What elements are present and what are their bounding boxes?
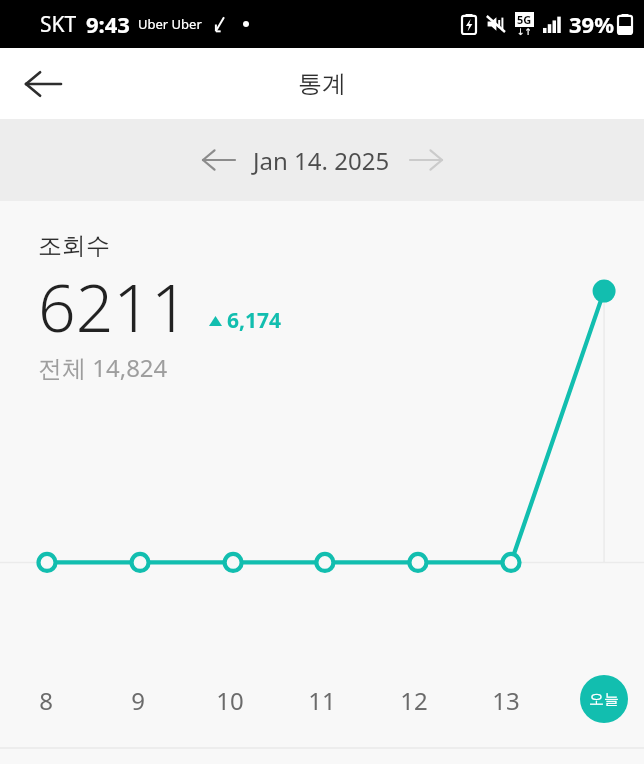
staticText: 전체 14,824 — [38, 351, 168, 384]
staticText: 6,174 — [227, 306, 282, 335]
button[interactable]: 오늘 — [580, 675, 628, 723]
staticText: 11 — [308, 684, 336, 717]
staticText: 12 — [400, 684, 428, 717]
staticText: 9 — [131, 684, 145, 717]
staticText: 9:43 — [86, 9, 130, 39]
staticText: 조회수 — [38, 231, 110, 261]
button[interactable]: Back — [14, 55, 72, 113]
staticText: SKT — [40, 10, 77, 39]
staticText: ↓↑ — [517, 27, 533, 37]
staticText: 오늘 — [589, 690, 619, 709]
staticText: 6211 — [38, 261, 189, 351]
staticText: 13 — [492, 684, 520, 717]
staticText: 5G — [517, 12, 532, 27]
staticText: 8 — [39, 684, 53, 717]
staticText: 39% — [569, 9, 615, 39]
staticText: 10 — [216, 684, 244, 717]
staticText: 통계 — [298, 69, 346, 99]
staticText: Uber Uber — [138, 15, 202, 33]
button[interactable]: Next day — [398, 132, 454, 188]
staticText: Jan 14. 2025 — [253, 144, 390, 177]
button[interactable]: Previous day — [191, 132, 247, 188]
